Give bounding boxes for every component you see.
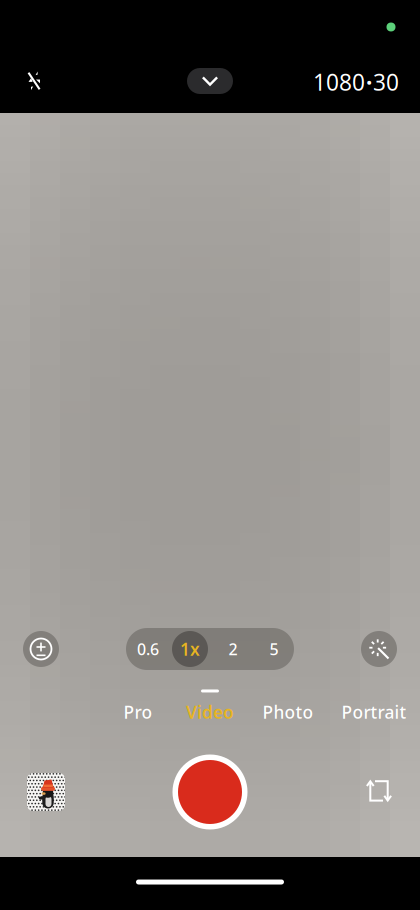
staticText: 5 — [269, 638, 278, 660]
button[interactable]: 0.6 — [129, 629, 167, 669]
button[interactable]: Switch Camera — [351, 763, 407, 819]
staticText: Portrait — [341, 700, 406, 723]
button[interactable]: 2 — [214, 629, 252, 669]
button[interactable]: 1x — [171, 629, 209, 669]
button[interactable]: More Camera Controls — [184, 64, 236, 98]
button[interactable]: Start Recording — [170, 752, 250, 832]
staticText: 30 — [373, 67, 399, 97]
staticText: Video — [186, 700, 234, 723]
button[interactable]: Video — [167, 681, 253, 736]
button[interactable]: Photo — [248, 681, 328, 736]
staticText: 1080 — [313, 67, 365, 97]
button[interactable]: Photographic Styles — [357, 627, 401, 671]
button[interactable]: 5 — [255, 629, 293, 669]
staticText: Photo — [262, 700, 313, 723]
staticText: 1x — [180, 637, 200, 660]
button[interactable]: Portrait — [328, 681, 420, 736]
staticText: · — [366, 67, 372, 97]
button[interactable]: Flash Off — [8, 57, 60, 105]
button[interactable]: Photo Library — [18, 764, 74, 820]
staticText: 2 — [228, 638, 237, 660]
button[interactable]: Exposure Compensation — [19, 627, 63, 671]
staticText: 0.6 — [137, 638, 159, 660]
button[interactable]: Pro — [100, 681, 176, 736]
staticText: Pro — [123, 700, 152, 723]
